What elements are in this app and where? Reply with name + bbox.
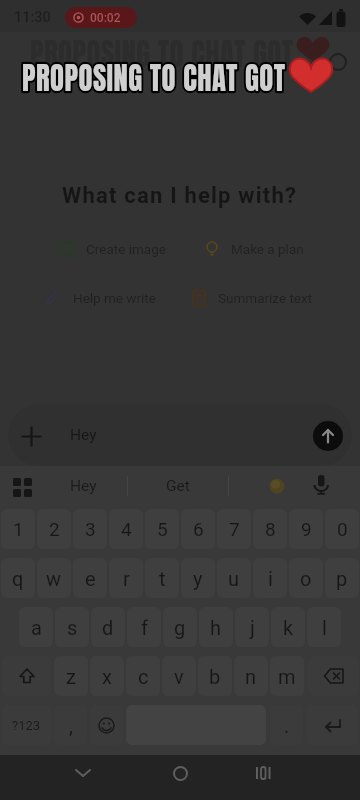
button[interactable]: t [145, 558, 179, 598]
button[interactable] [313, 421, 343, 451]
button[interactable] [160, 757, 200, 789]
staticText: 9 [301, 518, 312, 540]
button[interactable]: s [55, 607, 89, 647]
staticText: i [268, 567, 273, 590]
button[interactable]: 1 [1, 509, 35, 549]
button[interactable]: g [163, 607, 197, 647]
button[interactable]: w [37, 558, 71, 598]
button[interactable]: 5 [145, 509, 179, 549]
button[interactable]: p [325, 558, 359, 598]
staticText: 5 [157, 518, 168, 540]
button[interactable] [243, 757, 283, 789]
button[interactable]: y [181, 558, 215, 598]
button[interactable]: r [109, 558, 143, 598]
staticText: Hey [70, 477, 97, 495]
staticText: Summarize text [218, 290, 313, 306]
button[interactable]: d [91, 607, 125, 647]
staticText: What can I help with? [62, 183, 298, 209]
staticText: z [66, 665, 76, 688]
staticText: x [102, 665, 112, 688]
button[interactable]: e [73, 558, 107, 598]
staticText: 2 [49, 518, 60, 540]
button[interactable]: 8 [253, 509, 287, 549]
button[interactable]: 0 [325, 509, 359, 549]
button[interactable] [15, 420, 48, 453]
staticText: Make a plan [231, 241, 304, 257]
button[interactable]: 00:02 [65, 7, 137, 28]
button[interactable] [304, 470, 338, 502]
button[interactable]: f [127, 607, 161, 647]
staticText: p [336, 567, 348, 590]
staticText: w [46, 567, 62, 590]
button[interactable]: b [198, 656, 232, 696]
button[interactable]: x [90, 656, 124, 696]
button[interactable]: z [54, 656, 88, 696]
button[interactable] [307, 705, 358, 745]
staticText: Hey [70, 426, 97, 444]
staticText: 0 [337, 518, 348, 540]
staticText: . [284, 714, 290, 737]
staticText: r [123, 567, 130, 590]
staticText: a [31, 616, 42, 639]
button[interactable]: k [271, 607, 305, 647]
button[interactable]: Hey [48, 470, 118, 502]
staticText: t [159, 567, 166, 590]
staticText: 00:02 [90, 11, 121, 25]
button[interactable] [255, 470, 299, 502]
staticText: h [210, 616, 222, 639]
staticText: y [193, 567, 203, 590]
button[interactable]: a [19, 607, 53, 647]
staticText: 8 [265, 518, 276, 540]
staticText: k [283, 616, 294, 639]
button[interactable]: 4 [109, 509, 143, 549]
button[interactable] [2, 656, 51, 696]
staticText: 7 [229, 518, 240, 540]
button[interactable]: m [270, 656, 304, 696]
button[interactable]: Help me write [45, 285, 156, 311]
button[interactable] [6, 475, 38, 499]
staticText: b [209, 665, 221, 688]
button[interactable]: Make a plan [203, 236, 304, 262]
button[interactable]: i [253, 558, 287, 598]
staticText: s [67, 616, 78, 639]
button[interactable] [308, 656, 359, 696]
button[interactable]: o [289, 558, 323, 598]
button[interactable]: c [126, 656, 160, 696]
button[interactable]: u [217, 558, 251, 598]
staticText: n [245, 665, 257, 688]
staticText: Create image [86, 241, 166, 257]
button[interactable]: Get [143, 470, 213, 502]
staticText: j [250, 616, 255, 639]
button[interactable] [63, 757, 103, 789]
button[interactable]: v [162, 656, 196, 696]
staticText: Help me write [73, 290, 156, 306]
button[interactable]: j [235, 607, 269, 647]
staticText: d [102, 616, 114, 639]
button[interactable]: 7 [217, 509, 251, 549]
staticText: 3 [85, 518, 96, 540]
button[interactable]: 9 [289, 509, 323, 549]
button[interactable] [90, 705, 123, 745]
staticText: , [69, 714, 73, 737]
button[interactable]: ?123 [2, 705, 51, 745]
staticText: PROPOSING TO CHAT GOT [22, 54, 286, 101]
staticText: o [300, 567, 312, 590]
button[interactable]: 6 [181, 509, 215, 549]
button[interactable]: 2 [37, 509, 71, 549]
button[interactable]: h [199, 607, 233, 647]
staticText: PROPOSING TO CHAT GOT [30, 30, 294, 77]
staticText: u [228, 567, 240, 590]
staticText: 4 [121, 518, 132, 540]
staticText: g [174, 616, 186, 639]
button[interactable]: l [307, 607, 341, 647]
button[interactable]: Create image [58, 236, 166, 262]
button[interactable]: 3 [73, 509, 107, 549]
button[interactable]: n [234, 656, 268, 696]
button[interactable]: Summarize text [190, 285, 313, 311]
button[interactable]: q [1, 558, 35, 598]
staticText: c [138, 665, 149, 688]
staticText: 6 [193, 518, 204, 540]
